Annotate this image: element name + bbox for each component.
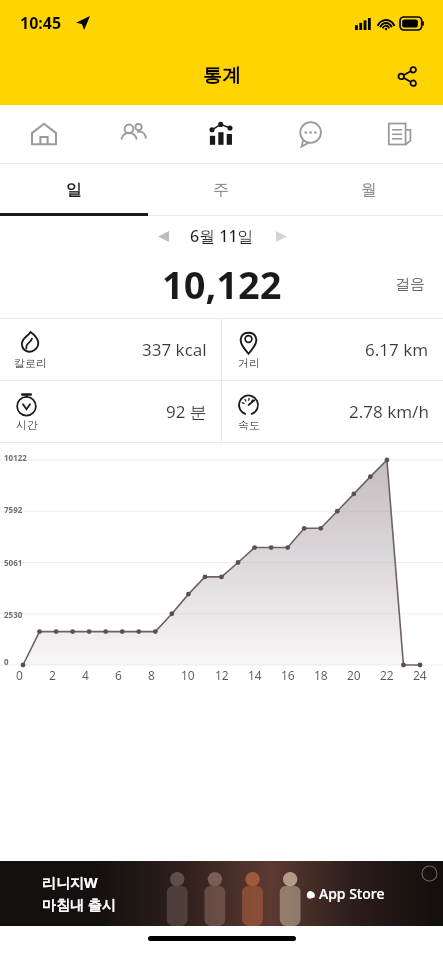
staticText: 칼로리 [14,356,47,370]
staticText: 2530 [4,609,23,620]
staticText: 거리 [238,356,260,370]
staticText: 시간 [16,418,38,432]
staticText: 2.78 km/h [349,400,429,423]
button[interactable]: 거리 [222,319,443,380]
staticText: 리니지W [42,873,98,892]
staticText: 2 [49,667,56,683]
button[interactable]: 월 [295,164,443,216]
staticText: 6월 11일 [190,225,254,247]
staticText: 10,122 [162,258,282,310]
staticText: 6 [115,667,122,683]
staticText: 걸음 [395,275,425,294]
staticText: 마침내 출시 [42,895,116,914]
staticText: 7592 [4,504,23,515]
button[interactable]: Friends [88,105,176,163]
button[interactable]: Ad info [422,866,437,881]
button[interactable]: Chat [265,105,354,163]
button[interactable]: 칼로리 [0,319,221,380]
staticText: 22 [380,667,394,683]
button[interactable]: 주 [147,164,295,216]
button[interactable]: 속도 [222,381,443,442]
staticText: 월 [361,180,377,200]
button[interactable]: Previous day [146,219,180,253]
button[interactable]: 시간 [0,381,221,442]
button[interactable]: 일 [0,164,147,216]
button[interactable]: Share [383,52,431,100]
staticText: 8 [148,667,155,683]
button[interactable]: News [354,105,443,163]
staticText: 18 [314,667,328,683]
staticText: 10:45 [20,12,62,34]
staticText: 6.17 km [365,338,429,361]
staticText: 일 [66,180,82,200]
staticText: 337 kcal [142,338,207,361]
staticText: 24 [413,667,427,683]
button[interactable]: Statistics [176,105,265,163]
staticText: 10122 [4,452,27,463]
staticText: App Store [319,884,385,903]
button[interactable]: Home [0,105,88,163]
staticText: 0 [4,656,9,667]
staticText: 속도 [238,418,260,432]
staticText: 92 분 [166,400,207,423]
staticText: 10 [181,667,195,683]
button[interactable]: 리니지W [0,861,443,926]
staticText: 20 [347,667,361,683]
staticText: 4 [82,667,89,683]
staticText: 통계 [203,64,241,88]
staticText: 주 [213,180,229,200]
staticText: 14 [248,667,262,683]
staticText: 12 [215,667,229,683]
staticText: 16 [281,667,295,683]
staticText: 0 [16,667,23,683]
button[interactable]: Next day [264,219,298,253]
staticText: 5061 [4,557,23,568]
